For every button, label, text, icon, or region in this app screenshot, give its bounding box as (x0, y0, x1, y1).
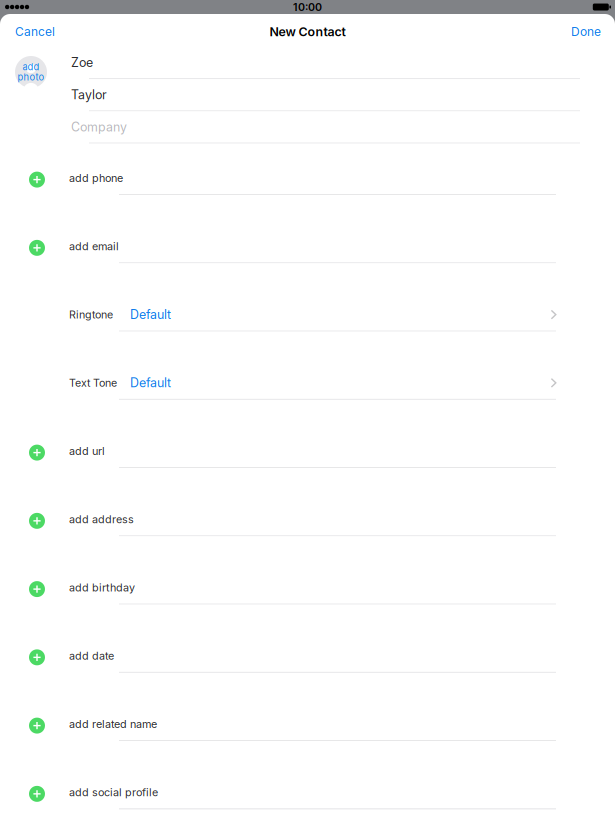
button[interactable]: add birthday (0, 536, 615, 605)
staticText: Ringtone (69, 308, 113, 321)
staticText: add date (69, 649, 114, 662)
staticText: New Contact (269, 24, 345, 39)
staticText: add related name (69, 718, 157, 731)
button[interactable]: add email (0, 195, 615, 263)
staticText: Company (71, 119, 127, 134)
button[interactable]: Text Tone (0, 332, 615, 400)
button[interactable]: Cancel (0, 14, 67, 47)
staticText: add address (69, 513, 134, 526)
button[interactable]: Company (0, 111, 615, 144)
staticText: Default (130, 307, 171, 322)
button[interactable]: add phone (0, 144, 615, 195)
button[interactable]: add address (0, 468, 615, 536)
staticText: Cancel (15, 24, 55, 39)
staticText: add birthday (69, 581, 135, 594)
button[interactable]: add date (0, 605, 615, 673)
button[interactable]: Zoe (0, 47, 615, 79)
button[interactable]: Ringtone (0, 263, 615, 332)
staticText: add (22, 61, 39, 72)
staticText: Done (571, 24, 601, 39)
staticText: Text Tone (69, 376, 117, 389)
button[interactable]: Add photo (15, 56, 47, 88)
button[interactable]: Taylor (0, 79, 615, 111)
staticText: Zoe (71, 55, 93, 70)
staticText: 10:00 (293, 0, 322, 13)
staticText: Taylor (71, 87, 107, 102)
staticText: add url (69, 445, 105, 458)
staticText: add email (69, 240, 119, 253)
staticText: add phone (69, 172, 123, 185)
staticText: add social profile (69, 786, 158, 799)
staticText: photo (17, 71, 44, 83)
button[interactable]: add related name (0, 673, 615, 741)
button[interactable]: Done (559, 14, 615, 47)
staticText: Default (130, 375, 171, 390)
button[interactable]: add url (0, 400, 615, 468)
button[interactable]: add social profile (0, 741, 615, 809)
